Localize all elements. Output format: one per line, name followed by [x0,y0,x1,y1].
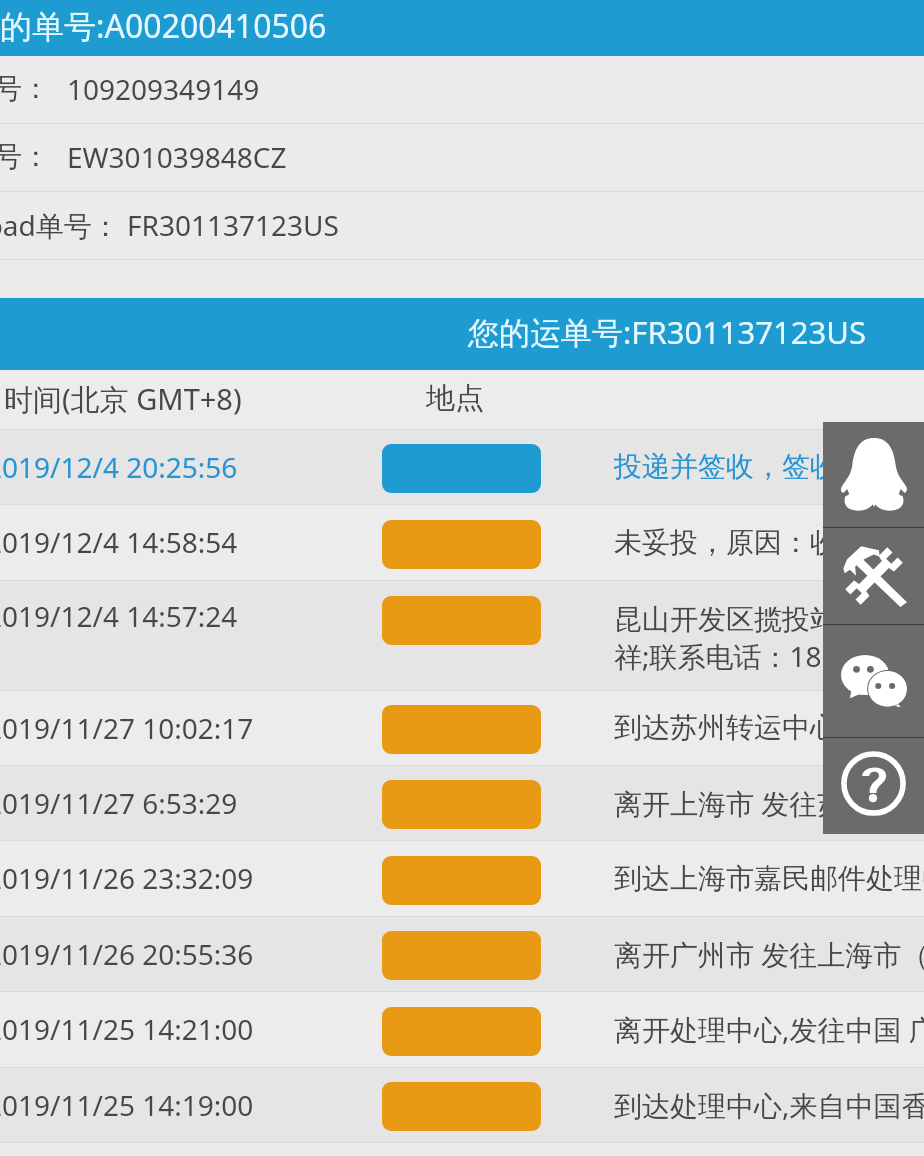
button[interactable]: 2019/12/4 14:57:24 [0,581,924,691]
staticText: 2019/12/4 14:58:54 [0,523,238,561]
button[interactable]: 2019/11/27 10:02:17 [0,691,924,766]
button[interactable]: 2019/11/26 20:55:36 [0,917,924,992]
button[interactable]: Upload单号： [0,192,924,259]
staticText: 2019/11/27 6:53:29 [0,784,238,822]
button[interactable]: 2019/11/25 14:19:00 [0,1068,924,1143]
staticText: 到达处理中心,来自中国香 [614,1086,924,1124]
staticText: 2019/12/4 20:25:56 [0,448,238,486]
button[interactable]: 运单号： [0,124,924,191]
staticText: 2019/11/26 20:55:36 [0,935,254,973]
staticText: 到达上海市嘉民邮件处理中 [614,861,924,896]
staticText: FR301137123US [127,206,339,244]
button[interactable]: Help [823,738,924,834]
staticText: 订单号： [0,71,50,106]
button[interactable]: 2019/12/4 14:58:54 [0,505,924,581]
staticText: 109209349149 [67,70,260,108]
button[interactable]: 2019/11/25 14:21:00 [0,992,924,1068]
staticText: 到达苏州转运中心 [614,710,838,745]
staticText: 您的单号:A00200410506 [0,4,327,48]
button[interactable]: 您的单号:A00200410506 [0,0,924,56]
staticText: 昆山开发区揽投站 [614,602,838,637]
staticText: 地点 [426,380,484,417]
staticText: EW301039848CZ [67,138,287,176]
button[interactable]: 订单号： [0,56,924,123]
staticText: 2019/11/26 23:32:09 [0,859,254,897]
staticText: 您的运单号:FR301137123US [468,311,866,353]
button[interactable]: WeChat [823,625,924,737]
button[interactable]: 2019/11/26 23:32:09 [0,841,924,917]
staticText: 离开处理中心,发往中国 广 [614,1010,924,1048]
staticText: 运单号： [0,139,50,174]
staticText: Upload单号： [0,206,120,244]
button[interactable]: 2019/11/27 6:53:29 [0,766,924,841]
staticText: 2019/12/4 14:57:24 [0,597,238,635]
button[interactable]: QQ [823,422,924,527]
staticText: 未妥投，原因：收 [614,525,838,560]
staticText: 祥;联系电话：180 [614,637,838,675]
staticText: 时间(北京 GMT+8) [4,379,242,419]
staticText: 离开广州市 发往上海市（ [614,935,924,973]
staticText: 离开上海市 发往苏 [614,784,846,822]
button[interactable]: 2019/12/4 20:25:56 [0,430,924,505]
staticText: 投递并签收，签收 [614,449,838,484]
staticText: 2019/11/25 14:19:00 [0,1086,254,1124]
button[interactable]: Tools [823,528,924,624]
staticText: 2019/11/27 10:02:17 [0,709,254,747]
staticText: 2019/11/25 14:21:00 [0,1010,254,1048]
button[interactable]: 您的运单号:FR301137123US [0,298,924,370]
